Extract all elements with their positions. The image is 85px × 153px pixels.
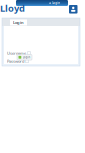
staticText: Password: [7, 58, 24, 64]
staticText: Login: [52, 1, 60, 5]
staticText: Lloyd: [0, 2, 25, 14]
staticText: Login: [22, 55, 30, 59]
staticText: Username: [7, 50, 26, 56]
button[interactable]: Login: [10, 19, 27, 25]
staticText: Login: [13, 20, 24, 25]
button[interactable]: Account: [69, 5, 77, 13]
button[interactable]: Login: [17, 54, 32, 60]
